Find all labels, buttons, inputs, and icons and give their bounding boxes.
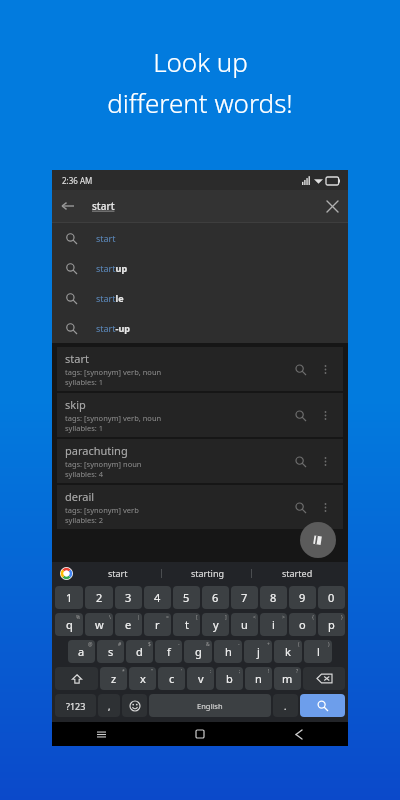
staticText: l xyxy=(317,644,320,659)
button[interactable]: t xyxy=(173,613,200,636)
button[interactable]: startup xyxy=(52,253,348,283)
button[interactable]: Search xyxy=(300,694,345,717)
button[interactable]: started xyxy=(252,562,342,584)
button[interactable]: Back xyxy=(249,722,348,746)
button[interactable]: Period xyxy=(273,694,298,717)
staticText: 4 xyxy=(154,590,161,605)
button[interactable]: Search again xyxy=(289,358,311,380)
button[interactable]: 1 xyxy=(55,586,83,609)
button[interactable]: Back xyxy=(52,190,84,222)
button[interactable]: More options xyxy=(315,405,335,425)
staticText: @ xyxy=(88,641,93,648)
staticText: different words! xyxy=(107,85,293,120)
staticText: * xyxy=(122,668,125,675)
button[interactable]: Key xyxy=(303,667,345,690)
button[interactable]: skip xyxy=(57,393,343,437)
button[interactable]: 7 xyxy=(231,586,258,609)
button[interactable]: 8 xyxy=(260,586,287,609)
button[interactable]: parachuting xyxy=(57,439,343,483)
button[interactable]: More options xyxy=(315,451,335,471)
staticText: skip xyxy=(65,397,86,412)
staticText: starting xyxy=(191,567,224,579)
staticText: parachuting xyxy=(65,443,128,458)
staticText: 2 xyxy=(96,590,103,605)
button[interactable]: r xyxy=(144,613,171,636)
button[interactable]: start xyxy=(52,223,348,253)
button[interactable]: More options xyxy=(315,497,335,517)
button[interactable]: o xyxy=(289,613,316,636)
staticText: i xyxy=(272,617,275,632)
staticText: u xyxy=(241,617,248,632)
button[interactable]: Home xyxy=(150,722,249,746)
button[interactable]: s xyxy=(97,640,124,663)
button[interactable]: 2 xyxy=(85,586,113,609)
button[interactable]: l xyxy=(304,640,332,663)
staticText: ] xyxy=(225,614,227,621)
staticText: 0 xyxy=(328,590,335,605)
button[interactable]: n xyxy=(245,667,272,690)
staticText: syllables: 2 xyxy=(65,515,104,525)
button[interactable]: h xyxy=(214,640,242,663)
staticText: f xyxy=(167,644,171,659)
button[interactable]: j xyxy=(244,640,272,663)
button[interactable]: startle xyxy=(52,283,348,313)
button[interactable]: v xyxy=(187,667,214,690)
button[interactable]: q xyxy=(55,613,83,636)
staticText: ? xyxy=(296,668,299,675)
button[interactable]: English xyxy=(149,694,271,717)
button[interactable]: Recents xyxy=(52,722,150,746)
button[interactable]: Clear xyxy=(316,190,348,222)
button[interactable]: starting xyxy=(162,562,252,584)
button[interactable]: k xyxy=(274,640,302,663)
button[interactable]: Search again xyxy=(289,404,311,426)
staticText: 2:36 AM xyxy=(62,175,93,186)
button[interactable]: a xyxy=(68,640,95,663)
button[interactable]: x xyxy=(129,667,156,690)
button[interactable]: 9 xyxy=(289,586,316,609)
button[interactable]: e xyxy=(115,613,142,636)
staticText: | xyxy=(137,614,140,621)
staticText: b xyxy=(226,671,233,686)
button[interactable]: 4 xyxy=(144,586,171,609)
button[interactable]: More options xyxy=(315,359,335,379)
button[interactable]: start-up xyxy=(52,313,348,343)
button[interactable]: ?123 xyxy=(55,694,96,717)
button[interactable]: derail xyxy=(57,485,343,529)
staticText: \ xyxy=(109,614,111,621)
button[interactable]: f xyxy=(155,640,182,663)
button[interactable]: p xyxy=(318,613,345,636)
button[interactable]: Search again xyxy=(289,496,311,518)
button[interactable]: 0 xyxy=(318,586,345,609)
staticText: y xyxy=(213,617,219,632)
button[interactable]: 3 xyxy=(115,586,142,609)
button[interactable]: z xyxy=(100,667,127,690)
staticText: q xyxy=(66,617,73,632)
button[interactable]: c xyxy=(158,667,185,690)
button[interactable]: start xyxy=(57,347,343,391)
button[interactable]: g xyxy=(184,640,212,663)
staticText: g xyxy=(195,644,202,659)
button[interactable]: b xyxy=(216,667,243,690)
button[interactable]: u xyxy=(231,613,258,636)
staticText: - xyxy=(178,641,180,648)
button[interactable]: y xyxy=(202,613,229,636)
staticText: = xyxy=(166,614,169,621)
staticText: start xyxy=(65,351,89,366)
button[interactable]: start xyxy=(73,562,162,584)
button[interactable]: Dictionary xyxy=(300,522,336,558)
button[interactable]: Key xyxy=(55,667,98,690)
staticText: tags: [synonym] verb, noun xyxy=(65,367,162,377)
button[interactable]: Back xyxy=(52,190,348,222)
staticText: start xyxy=(108,567,128,579)
button[interactable]: Search again xyxy=(289,450,311,472)
staticText: 3 xyxy=(125,590,132,605)
button[interactable]: Comma xyxy=(98,694,120,717)
button[interactable]: 5 xyxy=(173,586,200,609)
button[interactable]: i xyxy=(260,613,287,636)
button[interactable]: Emoji xyxy=(122,694,147,717)
button[interactable]: d xyxy=(126,640,153,663)
button[interactable]: w xyxy=(85,613,113,636)
staticText: } xyxy=(341,614,343,621)
button[interactable]: 6 xyxy=(202,586,229,609)
button[interactable]: m xyxy=(274,667,301,690)
